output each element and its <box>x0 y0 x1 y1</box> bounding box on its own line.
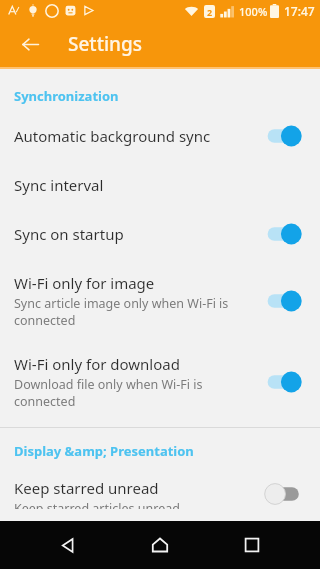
staticText: Sync interval <box>14 175 104 195</box>
staticText: Synchronization <box>14 87 306 105</box>
button[interactable]: Sync interval <box>0 161 320 207</box>
button[interactable]: Sync on startup <box>0 207 320 259</box>
button[interactable]: Toggle on <box>266 369 306 395</box>
staticText: Sync on startup <box>14 224 124 244</box>
staticText: Keep starred articles unread <box>14 500 180 509</box>
staticText: Wi-Fi only for image <box>14 273 155 293</box>
button[interactable]: Toggle off <box>266 481 306 507</box>
staticText: 100% <box>239 4 268 19</box>
button[interactable]: Home <box>136 521 184 569</box>
staticText: Automatic background sync <box>14 126 211 146</box>
button[interactable]: Wi-Fi only for download <box>0 340 320 421</box>
button[interactable]: Toggle on <box>266 123 306 149</box>
staticText: Wi-Fi only for download <box>14 354 180 374</box>
button[interactable]: Recent apps <box>228 521 276 569</box>
button[interactable]: Toggle on <box>266 288 306 314</box>
button[interactable]: Wi-Fi only for image <box>0 259 320 340</box>
button[interactable]: Back <box>12 26 48 62</box>
staticText: Display &amp; Presentation <box>14 442 306 460</box>
staticText: 17:47 <box>284 3 315 19</box>
button[interactable]: Keep starred unread <box>0 464 320 521</box>
button[interactable]: Back <box>44 521 92 569</box>
staticText: Download file only when Wi-Fi is connect… <box>14 376 203 409</box>
staticText: Sync article image only when Wi-Fi is co… <box>14 295 229 328</box>
button[interactable]: Toggle on <box>266 221 306 247</box>
staticText: 2 <box>207 6 213 18</box>
staticText: Settings <box>68 31 142 57</box>
staticText: Keep starred unread <box>14 478 159 498</box>
button[interactable]: Automatic background sync <box>0 109 320 161</box>
